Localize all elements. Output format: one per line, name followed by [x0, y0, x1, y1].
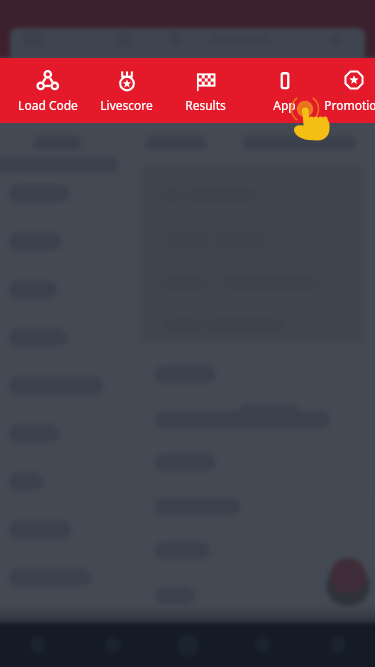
- button[interactable]: [0, 507, 140, 551]
- other: Tap: [288, 92, 336, 140]
- button[interactable]: Promotions: [324, 58, 375, 123]
- button[interactable]: App: [245, 58, 324, 123]
- button[interactable]: Bet slip: [330, 558, 366, 594]
- button[interactable]: Load Code: [8, 58, 87, 123]
- button[interactable]: [150, 575, 365, 615]
- staticText: Promotions: [324, 97, 375, 113]
- button[interactable]: [150, 530, 365, 570]
- staticText: Load Code: [18, 97, 78, 113]
- staticText: Results: [185, 97, 226, 113]
- button[interactable]: Search: [10, 28, 365, 58]
- button[interactable]: Live: [150, 623, 225, 667]
- button[interactable]: [150, 486, 365, 526]
- staticText: Livescore: [100, 97, 153, 113]
- button[interactable]: Results: [166, 58, 245, 123]
- button[interactable]: Livescore: [87, 58, 166, 123]
- button[interactable]: [0, 171, 140, 215]
- button[interactable]: [23, 128, 92, 158]
- button[interactable]: [150, 399, 365, 439]
- button[interactable]: [232, 128, 366, 158]
- button[interactable]: [0, 555, 140, 599]
- button[interactable]: [135, 128, 217, 158]
- staticText: App: [273, 97, 296, 113]
- button[interactable]: [0, 363, 140, 407]
